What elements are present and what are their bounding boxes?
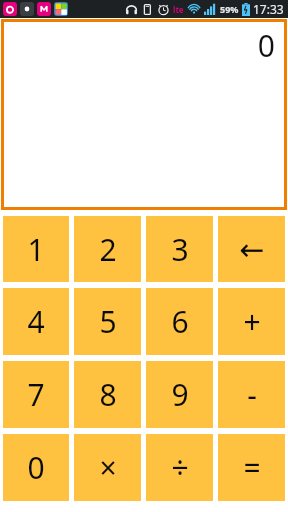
button[interactable]: Equals <box>218 434 285 501</box>
staticText: 17:33 <box>253 1 284 17</box>
staticText: = <box>243 447 261 488</box>
button[interactable]: Divide <box>146 434 213 501</box>
button[interactable]: 8 <box>74 361 141 428</box>
staticText: ÷ <box>171 447 189 488</box>
button[interactable]: 7 <box>3 361 69 428</box>
button[interactable]: 4 <box>3 288 69 355</box>
button[interactable]: 3 <box>146 216 213 282</box>
staticText: 0 <box>27 447 45 488</box>
staticText: 5 <box>99 301 117 342</box>
staticText: × <box>99 447 117 488</box>
staticText: ← <box>239 232 265 267</box>
staticText: 2 <box>99 229 117 270</box>
button[interactable]: 2 <box>74 216 141 282</box>
button[interactable]: 1 <box>3 216 69 282</box>
button[interactable]: 0 <box>3 434 69 501</box>
button[interactable]: Multiply <box>74 434 141 501</box>
staticText: 3 <box>171 229 189 270</box>
button[interactable]: 5 <box>74 288 141 355</box>
staticText: - <box>247 374 257 415</box>
staticText: 7 <box>27 374 45 415</box>
button[interactable]: 6 <box>146 288 213 355</box>
staticText: lte <box>173 4 184 15</box>
staticText: 8 <box>99 374 117 415</box>
staticText: 4 <box>27 301 45 342</box>
staticText: 0 <box>257 25 275 66</box>
button[interactable]: Minus <box>218 361 285 428</box>
staticText: 6 <box>171 301 189 342</box>
button[interactable]: 9 <box>146 361 213 428</box>
button[interactable]: Backspace <box>218 216 285 282</box>
staticText: 1 <box>27 229 45 270</box>
staticText: 59% <box>220 3 239 15</box>
button[interactable]: Plus <box>218 288 285 355</box>
staticText: 9 <box>171 374 189 415</box>
staticText: + <box>243 301 261 342</box>
